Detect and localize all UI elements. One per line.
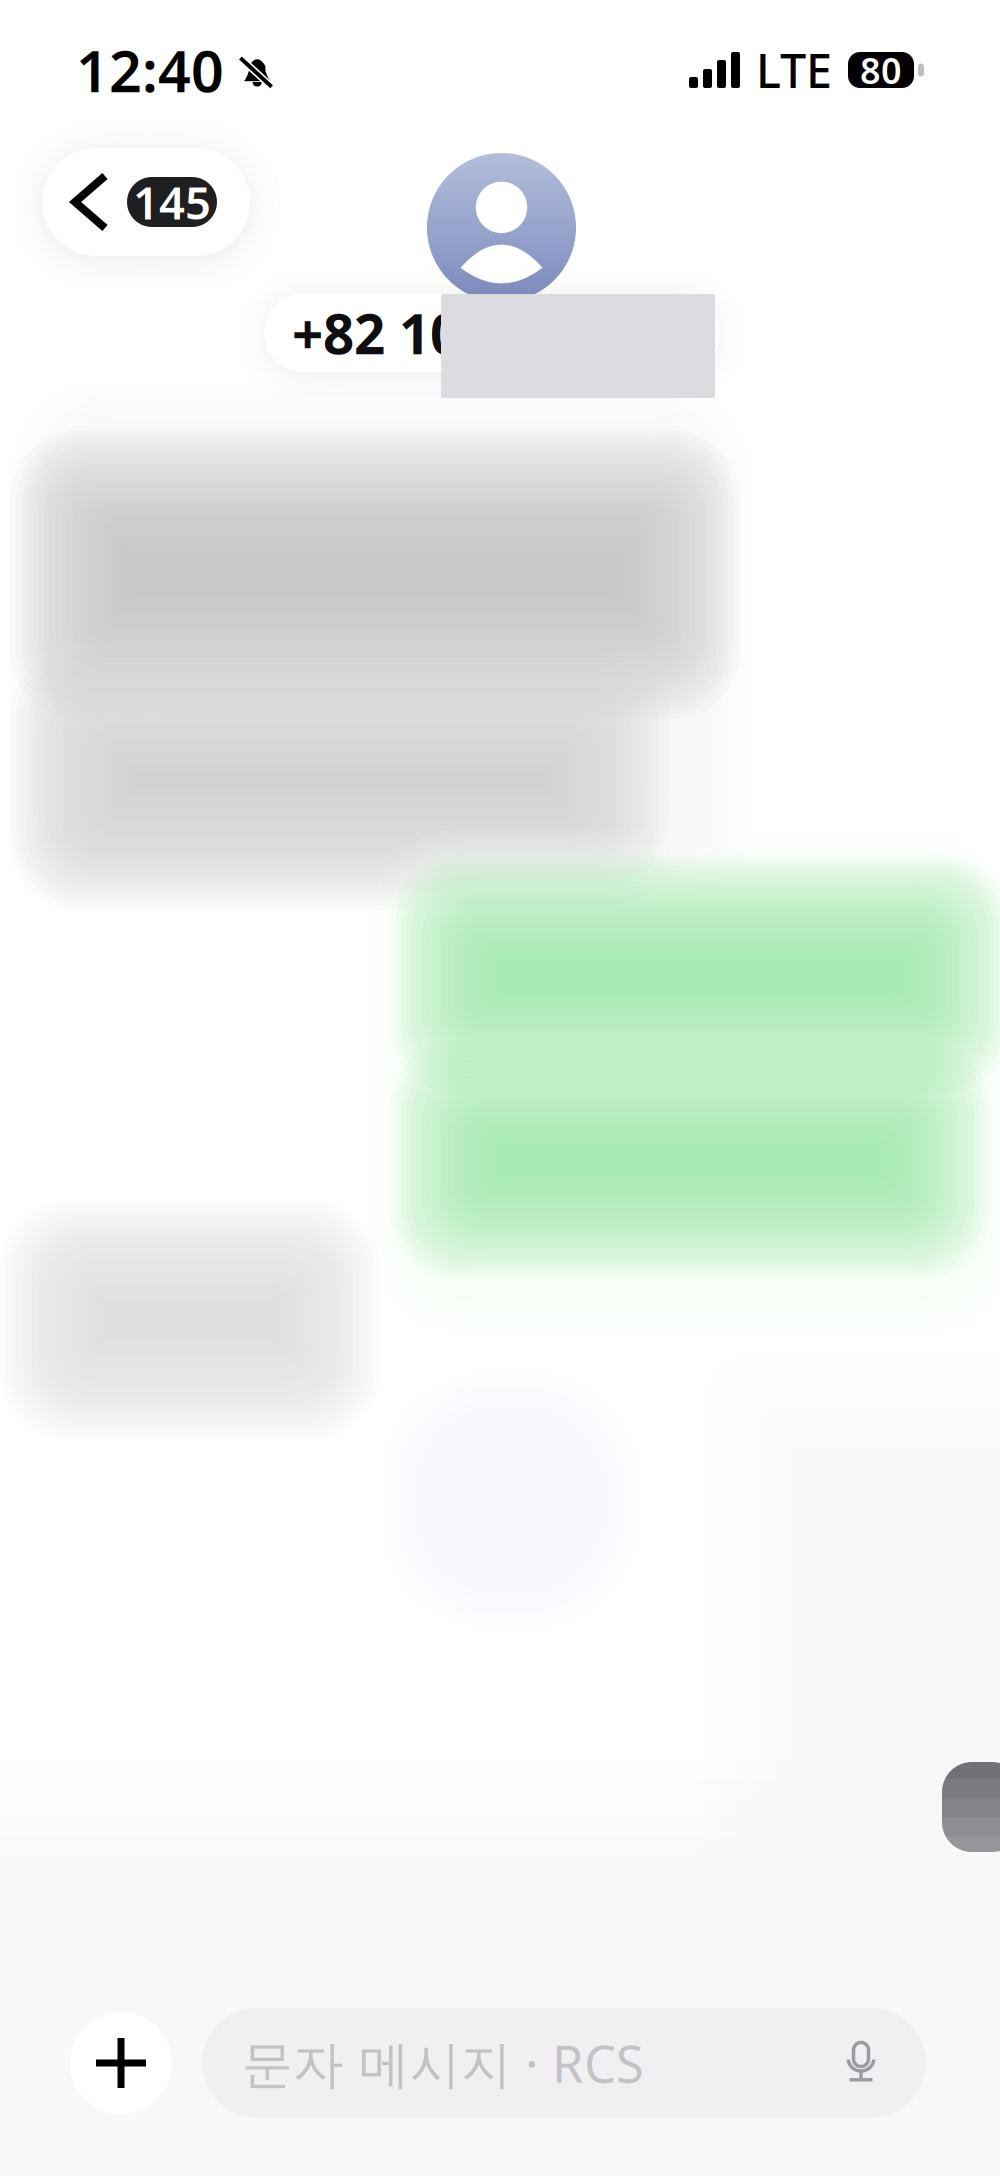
button[interactable]: Back, 145 unread: [42, 148, 250, 256]
staticText: 문자 메시지 · RCS: [242, 2029, 644, 2097]
staticText: LTE: [756, 39, 832, 101]
button[interactable]: Message field, SMS RCS: [202, 2008, 926, 2118]
staticText: 12:40: [76, 32, 224, 108]
button[interactable]: Contact phone number: [264, 294, 720, 372]
staticText: +82 10: [292, 297, 461, 369]
button[interactable]: Add attachment: [70, 2012, 172, 2114]
staticText: 80: [860, 46, 902, 94]
staticText: 145: [133, 172, 211, 232]
